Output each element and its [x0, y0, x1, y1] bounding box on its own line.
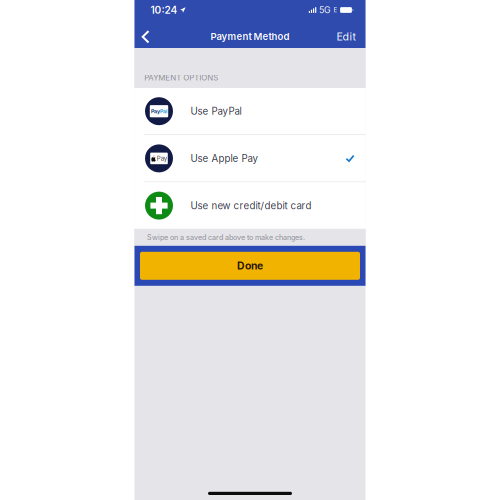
- staticText: 10:24: [150, 4, 177, 16]
- staticText: 5G: [319, 5, 331, 15]
- button[interactable]: Pay: [134, 88, 365, 134]
- staticText: Pal: [160, 108, 167, 114]
- staticText: Edit: [336, 30, 355, 43]
- button[interactable]: Pay: [134, 135, 365, 182]
- staticText: Pay: [151, 108, 160, 114]
- button[interactable]: Use new credit/debit card: [134, 182, 365, 229]
- staticText: E: [333, 6, 337, 14]
- staticText: Use PayPal: [190, 105, 241, 117]
- staticText: Use Apple Pay: [190, 152, 257, 164]
- button[interactable]: Edit: [336, 22, 365, 50]
- staticText: Done: [237, 259, 263, 272]
- staticText: Pay: [157, 155, 167, 162]
- button[interactable]: Done: [134, 246, 365, 286]
- button[interactable]: Back: [134, 22, 163, 50]
- staticText: Swipe on a saved card above to make chan…: [147, 233, 305, 242]
- staticText: Use new credit/debit card: [190, 200, 311, 211]
- staticText: PAYMENT OPTIONS: [144, 73, 218, 82]
- staticText: Payment Method: [210, 31, 289, 42]
